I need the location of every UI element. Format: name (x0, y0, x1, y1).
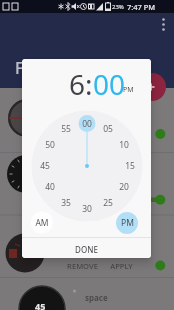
button[interactable]: REMOVE (63, 260, 102, 272)
staticText: AM (35, 217, 49, 229)
staticText: 00 (93, 65, 126, 103)
staticText: 40 (45, 181, 55, 193)
staticText: Facer (15, 57, 57, 79)
staticText: 15 (125, 160, 135, 172)
button[interactable]: DONE (22, 240, 151, 258)
button[interactable] (156, 15, 171, 47)
staticText: 7:47 PM (127, 2, 156, 12)
staticText: DONE (75, 244, 98, 255)
staticText: space (85, 292, 108, 303)
staticText: APPLY (110, 261, 133, 271)
staticText: 25 (103, 197, 113, 209)
staticText: 45 (35, 300, 46, 310)
staticText: 00 (82, 118, 92, 130)
staticText: PM (123, 85, 134, 95)
staticText: 45 (40, 160, 50, 172)
staticText: 35 (61, 197, 71, 209)
staticText: 6: (69, 65, 93, 103)
staticText: 50 (45, 139, 55, 151)
staticText: 05 (103, 123, 113, 135)
button[interactable] (138, 73, 166, 101)
staticText: 10 (119, 139, 129, 151)
staticText: 23% (112, 3, 124, 11)
button[interactable]: APPLY (104, 260, 139, 272)
staticText: 30 (82, 203, 92, 215)
staticText: PM (121, 217, 134, 229)
staticText: 20 (119, 181, 129, 193)
button[interactable]: PM (116, 212, 138, 234)
staticText: REMOVE (67, 261, 98, 271)
button[interactable]: AM (30, 212, 54, 234)
staticText: 55 (61, 123, 71, 135)
